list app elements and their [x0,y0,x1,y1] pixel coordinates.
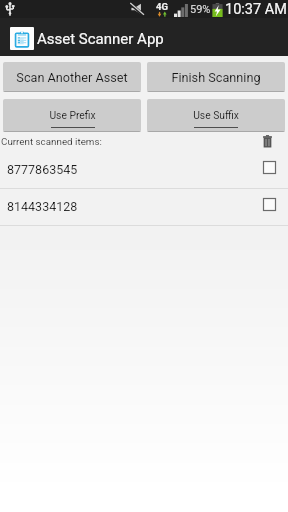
button[interactable]: 8777863545 [0,152,288,188]
staticText: 4G [156,1,168,12]
staticText: Finish Scanning [171,70,261,85]
button[interactable]: Scan Another Asset [3,62,141,92]
staticText: Asset Scanner App [37,30,164,48]
button[interactable]: Finish Scanning [147,62,285,92]
staticText: 59% [190,3,211,16]
staticText: Scan Another Asset [16,70,128,85]
staticText: 10:37 AM [225,1,287,18]
button[interactable]: Delete all scanned items [259,133,276,150]
staticText: Use Suffix [193,109,239,121]
button[interactable]: Use Prefix [3,99,141,132]
button[interactable]: Use Suffix [147,99,285,132]
staticText: Current scanned items: [1,136,102,147]
staticText: 8144334128 [7,199,78,214]
button[interactable]: 8144334128 [0,189,288,225]
button[interactable]: Select 8144334128 [260,195,278,213]
staticText: Use Prefix [49,109,96,121]
staticText: 8777863545 [7,162,78,177]
button[interactable]: Select 8777863545 [260,158,278,176]
